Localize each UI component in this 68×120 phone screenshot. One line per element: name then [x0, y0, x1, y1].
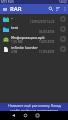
button[interactable]: Sort — [54, 4, 61, 14]
button[interactable]: Back — [10, 111, 17, 120]
staticText: test — [11, 25, 19, 30]
button[interactable]: infinite border — [0, 44, 68, 54]
button[interactable]: Recent apps — [34, 111, 41, 120]
staticText: Нажмите ещё раз кнопку Назад — [8, 103, 61, 108]
staticText: 10.09.2018 — [39, 40, 55, 44]
staticText: 12/05/2018 14:22 — [30, 20, 55, 24]
staticText: MTS RUS — [1, 0, 14, 4]
button[interactable]: .. — [0, 14, 68, 24]
staticText: 14:52 — [59, 0, 67, 4]
button[interactable]: Нажмите ещё раз кнопку Назад — [0, 103, 68, 111]
button[interactable]: More options — [61, 4, 68, 14]
staticText: RAR — [10, 5, 22, 13]
staticText: Информация.apk — [11, 35, 45, 40]
button[interactable]: Home — [22, 111, 29, 120]
staticText: .. — [11, 15, 14, 20]
staticText: чтобы выйти из приложения — [10, 108, 58, 111]
button[interactable]: test — [0, 24, 68, 34]
button[interactable]: Search — [47, 4, 54, 14]
staticText: 1,56 MB — [11, 40, 23, 44]
staticText: 06.09.2018 — [39, 30, 55, 34]
staticText: 2 KB — [11, 50, 18, 54]
button[interactable]: Menu — [0, 4, 10, 14]
staticText: 11.09.2018 — [39, 50, 55, 54]
staticText: infinite border — [11, 45, 38, 50]
button[interactable]: Информация.apk — [0, 34, 68, 44]
